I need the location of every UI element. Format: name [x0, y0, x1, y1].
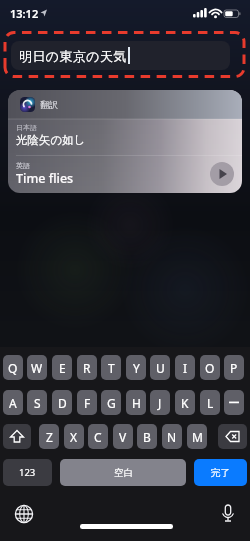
staticText: Y — [133, 360, 140, 376]
button[interactable]: H — [126, 390, 146, 415]
button[interactable]: 完了 — [194, 459, 247, 486]
staticText: Q — [8, 360, 18, 376]
button[interactable]: ー — [224, 390, 244, 415]
staticText: F — [84, 395, 91, 411]
staticText: N — [167, 429, 177, 445]
staticText: ー — [228, 395, 240, 410]
staticText: 英語 — [16, 161, 30, 170]
staticText: J — [158, 395, 162, 411]
button[interactable]: 空白 — [60, 459, 186, 486]
staticText: V — [119, 429, 127, 445]
button[interactable] — [210, 162, 234, 186]
staticText: M — [192, 429, 203, 445]
button[interactable]: 123 — [3, 459, 52, 486]
button[interactable]: E — [52, 355, 72, 380]
button[interactable]: N — [162, 424, 182, 449]
staticText: 日本語 — [16, 123, 37, 132]
button[interactable]: L — [200, 390, 220, 415]
staticText: 翻訳 — [40, 99, 58, 110]
staticText: 光陰矢の如し — [16, 133, 86, 147]
staticText: U — [156, 360, 165, 376]
staticText: O — [205, 360, 215, 376]
button[interactable]: U — [150, 355, 170, 380]
button[interactable]: P — [224, 355, 244, 380]
staticText: Z — [46, 429, 53, 445]
button[interactable]: S — [27, 390, 47, 415]
staticText: S — [34, 395, 41, 411]
staticText: R — [83, 360, 91, 376]
button[interactable]: J — [150, 390, 170, 415]
staticText: 13:12 — [10, 6, 39, 21]
staticText: 完了 — [211, 467, 230, 479]
button[interactable]: F — [77, 390, 97, 415]
staticText: I — [183, 360, 188, 376]
staticText: G — [107, 395, 116, 411]
staticText: 空白 — [114, 467, 133, 479]
button[interactable]: O — [200, 355, 220, 380]
button[interactable] — [3, 424, 31, 449]
staticText: Time flies — [16, 170, 74, 187]
button[interactable]: B — [137, 424, 157, 449]
button[interactable]: D — [52, 390, 72, 415]
button[interactable] — [218, 424, 247, 449]
button[interactable]: K — [175, 390, 195, 415]
staticText: B — [143, 429, 151, 445]
staticText: T — [108, 360, 115, 376]
button[interactable]: V — [113, 424, 133, 449]
button[interactable]: Z — [39, 424, 59, 449]
staticText: 123 — [19, 466, 36, 479]
button[interactable]: X — [64, 424, 84, 449]
button[interactable] — [216, 502, 240, 526]
button[interactable]: C — [88, 424, 108, 449]
button[interactable]: 翻訳 — [8, 90, 242, 193]
button[interactable]: Q — [3, 355, 23, 380]
button[interactable]: G — [101, 390, 121, 415]
staticText: K — [181, 395, 189, 411]
button[interactable]: A — [3, 390, 23, 415]
button[interactable]: W — [27, 355, 47, 380]
staticText: X — [70, 429, 78, 445]
button[interactable]: M — [187, 424, 207, 449]
staticText: C — [94, 429, 102, 445]
staticText: P — [230, 360, 238, 376]
staticText: A — [9, 395, 17, 411]
staticText: W — [31, 360, 43, 376]
button[interactable]: R — [77, 355, 97, 380]
staticText: H — [132, 395, 141, 411]
button[interactable]: I — [175, 355, 195, 380]
button[interactable] — [12, 502, 36, 526]
staticText: D — [58, 395, 67, 411]
staticText: E — [59, 360, 66, 376]
button[interactable]: T — [101, 355, 121, 380]
staticText: 明日の東京の天気 — [19, 48, 127, 64]
button[interactable]: 明日の東京の天気 — [11, 41, 230, 70]
staticText: L — [207, 395, 214, 411]
button[interactable]: Y — [126, 355, 146, 380]
